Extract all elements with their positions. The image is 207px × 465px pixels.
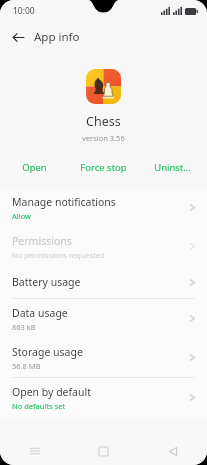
- button[interactable]: Force stop: [69, 156, 138, 178]
- staticText: Permissions: [12, 234, 72, 248]
- staticText: App info: [34, 29, 80, 45]
- button[interactable]: Data usage: [0, 299, 207, 338]
- button[interactable]: Open: [0, 156, 69, 178]
- staticText: 863 kB: [12, 322, 36, 332]
- staticText: No defaults set: [12, 401, 66, 411]
- staticText: No permissions requested: [12, 250, 105, 260]
- staticText: 56.8 MB: [12, 361, 41, 371]
- staticText: Force stop: [80, 161, 127, 174]
- button[interactable]: Battery usage: [0, 266, 207, 298]
- staticText: Allow: [12, 211, 31, 221]
- button[interactable]: Open by default: [0, 378, 207, 417]
- staticText: version 3.56: [82, 133, 125, 143]
- button[interactable]: Uninst…: [138, 156, 207, 178]
- button[interactable]: Recent apps: [0, 437, 69, 465]
- button[interactable]: Back: [138, 437, 207, 465]
- staticText: Data usage: [12, 306, 68, 320]
- staticText: Chess: [86, 113, 121, 130]
- button[interactable]: Chess app icon: [86, 69, 121, 104]
- staticText: 10:00: [13, 5, 35, 17]
- staticText: Storage usage: [12, 345, 83, 359]
- button[interactable]: Home: [69, 437, 138, 465]
- button[interactable]: Permissions: [0, 227, 207, 266]
- button[interactable]: Storage usage: [0, 338, 207, 377]
- staticText: Battery usage: [12, 275, 81, 289]
- button[interactable]: Back: [8, 27, 28, 47]
- staticText: Open: [22, 161, 47, 174]
- button[interactable]: Manage notifications: [0, 188, 207, 227]
- staticText: Open by default: [12, 385, 92, 399]
- staticText: Manage notifications: [12, 195, 116, 209]
- staticText: Uninst…: [154, 161, 191, 174]
